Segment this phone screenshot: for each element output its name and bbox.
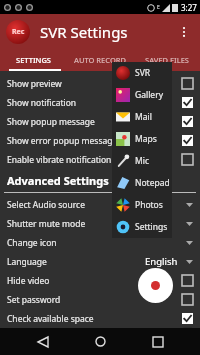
button[interactable]: Check available space [0, 309, 200, 328]
button[interactable]: Notepad [112, 172, 172, 194]
button[interactable]: Home [85, 328, 115, 355]
staticText: SVR [135, 67, 151, 79]
button[interactable]: Show popup message [0, 112, 200, 131]
button[interactable]: Select Audio source [0, 195, 200, 214]
staticText: Check available space [7, 313, 182, 325]
staticText: Show popup message [7, 116, 182, 128]
button[interactable]: Mic [112, 150, 172, 172]
button[interactable]: Hide video [0, 271, 200, 290]
button[interactable]: SAVED FILES [133, 49, 200, 71]
button[interactable]: Shutter mute mode [0, 214, 200, 233]
staticText: Notepad [135, 177, 170, 189]
staticText: English [145, 255, 178, 268]
staticText: Photos [135, 199, 163, 211]
staticText: Advanced Settings [7, 173, 109, 188]
staticText: SETTINGS [16, 55, 51, 65]
button[interactable]: AUTO RECORD [66, 49, 133, 71]
staticText: E [157, 4, 160, 11]
button[interactable]: Settings [112, 216, 172, 238]
staticText: Rec [12, 27, 25, 37]
staticText: Change icon [7, 237, 186, 249]
button[interactable]: Show notification [0, 93, 200, 112]
staticText: Show error popup message [7, 135, 182, 147]
button[interactable]: More options [172, 20, 196, 44]
staticText: AUTO RECORD [74, 55, 126, 65]
staticText: Show notification [7, 97, 182, 109]
staticText: Settings [135, 221, 168, 233]
staticText: Gallery [135, 89, 163, 101]
staticText: Select Audio source [7, 199, 186, 211]
staticText: Show preview [7, 78, 182, 90]
button[interactable]: Mail [112, 106, 172, 128]
button[interactable]: Set password [0, 290, 200, 309]
button[interactable]: Photos [112, 194, 172, 216]
staticText: Enable vibrate notification [7, 154, 182, 166]
staticText: Mail [135, 111, 152, 123]
button[interactable]: Back [28, 328, 58, 355]
staticText: SAVED FILES [145, 55, 189, 65]
staticText: 3:27 [181, 2, 197, 13]
staticText: Set password [7, 294, 182, 306]
staticText: SVR Settings [40, 22, 128, 42]
staticText: Maps [135, 133, 157, 145]
button[interactable]: SVR [112, 62, 172, 84]
button[interactable]: SETTINGS [0, 49, 66, 71]
button[interactable]: Change icon [0, 233, 200, 252]
staticText: Mic [135, 155, 149, 167]
staticText: Language [7, 256, 145, 268]
button[interactable]: Language [0, 252, 200, 271]
button[interactable]: Enable vibrate notification [0, 150, 200, 169]
button[interactable]: Record [138, 268, 173, 303]
button[interactable]: Show error popup message [0, 131, 200, 150]
staticText: Shutter mute mode [7, 218, 186, 230]
button[interactable]: Maps [112, 128, 172, 150]
staticText: Hide video [7, 275, 182, 287]
button[interactable]: Show preview [0, 74, 200, 93]
button[interactable]: Recents [143, 328, 173, 355]
button[interactable]: Gallery [112, 84, 172, 106]
